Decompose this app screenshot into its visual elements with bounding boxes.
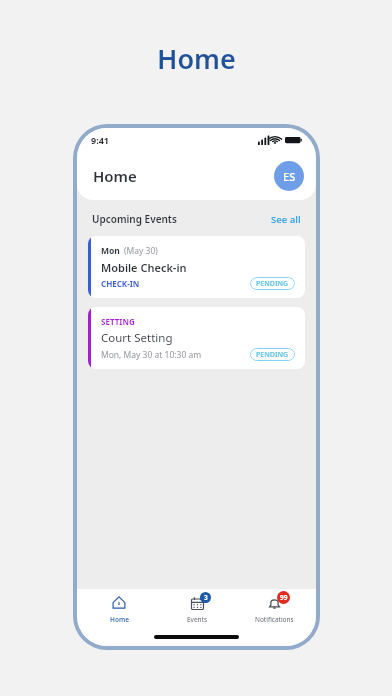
staticText: Home — [157, 40, 236, 77]
staticText: PENDING — [256, 279, 289, 289]
staticText: (May 30) — [124, 245, 158, 257]
staticText: PENDING — [256, 350, 289, 360]
button[interactable]: 99 — [238, 594, 310, 624]
button[interactable]: 3 — [161, 594, 233, 624]
staticText: Events — [187, 615, 208, 624]
button[interactable]: Profile — [274, 161, 304, 191]
staticText: Mobile Check-in — [101, 260, 187, 275]
staticText: 9:41 — [91, 134, 109, 146]
staticText: Court Setting — [101, 330, 173, 346]
staticText: ES — [283, 169, 296, 184]
staticText: Mon — [101, 245, 120, 257]
staticText: Mon, May 30 at 10:30 am — [101, 349, 202, 361]
button[interactable]: Mon — [88, 236, 305, 298]
button[interactable]: See all — [271, 213, 301, 226]
staticText: Home — [110, 615, 129, 624]
staticText: SETTING — [101, 316, 135, 327]
staticText: See all — [271, 213, 301, 226]
button[interactable]: Home — [83, 594, 155, 624]
staticText: Notifications — [255, 615, 294, 624]
staticText: CHECK-IN — [101, 278, 140, 289]
staticText: Home — [93, 166, 137, 186]
staticText: 3 — [204, 593, 208, 602]
button[interactable]: SETTING — [88, 307, 305, 369]
staticText: 99 — [280, 593, 288, 602]
staticText: Upcoming Events — [92, 212, 177, 226]
